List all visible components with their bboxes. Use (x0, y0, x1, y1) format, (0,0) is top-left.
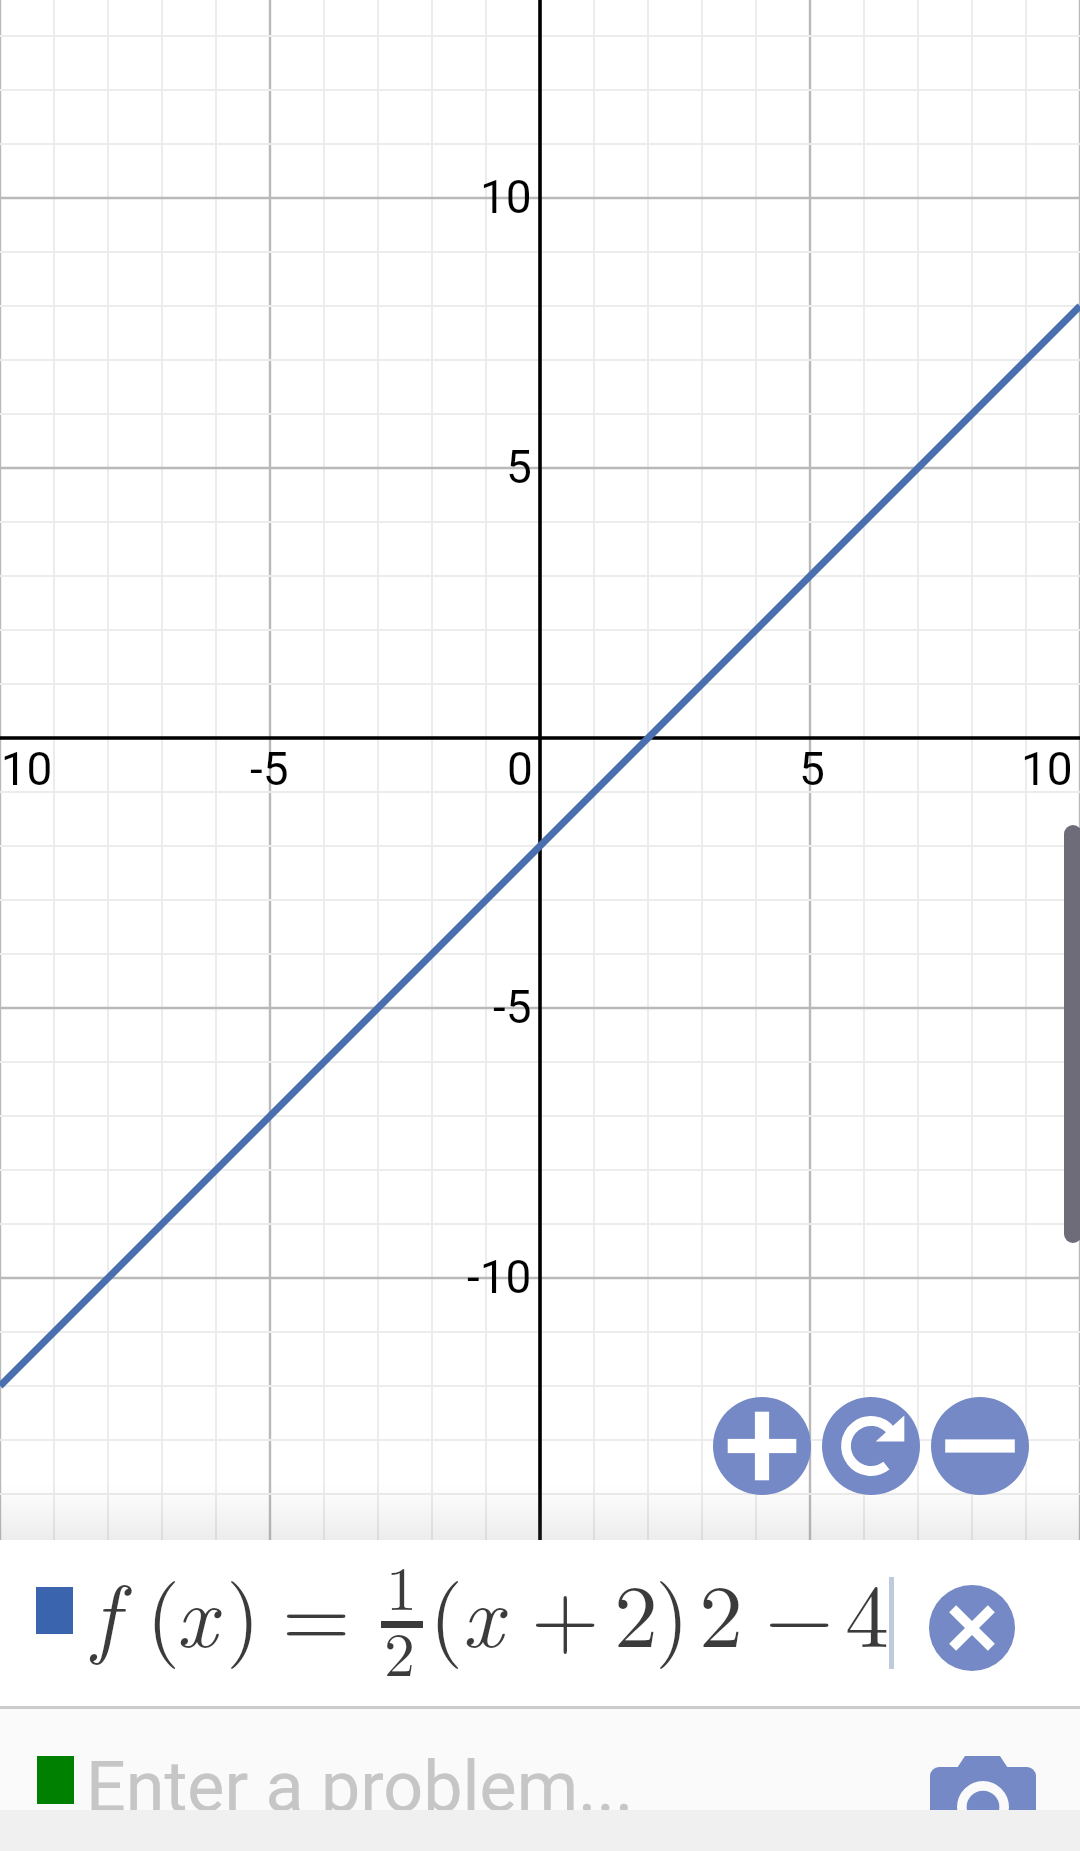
button[interactable]: Clear expression (929, 1585, 1015, 1671)
staticText: 2 (614, 1548, 659, 1673)
button[interactable]: f (0, 1540, 1080, 1706)
staticText: 4 (845, 1548, 890, 1673)
staticText: 1 (386, 1540, 418, 1628)
button[interactable]: Graph of f(x) (0, 0, 1080, 1540)
staticText: ) (655, 1548, 690, 1673)
staticText: f (92, 1548, 120, 1673)
staticText: 2 (384, 1606, 416, 1694)
staticText: ) (226, 1548, 261, 1673)
staticText: x (176, 1548, 217, 1673)
button[interactable]: Zoom out (931, 1397, 1029, 1495)
button[interactable]: Zoom in (713, 1397, 811, 1495)
staticText: x (462, 1548, 503, 1673)
staticText: 2 (699, 1548, 744, 1673)
staticText: ( (429, 1548, 464, 1673)
staticText: = (282, 1548, 351, 1673)
staticText: + (531, 1548, 600, 1673)
staticText: Enter a problem... (86, 1746, 634, 1828)
button[interactable]: Reset view (822, 1397, 920, 1495)
button[interactable]: Scan problem with camera (930, 1756, 1036, 1851)
button[interactable]: Enter a problem... (0, 1709, 1080, 1851)
staticText: − (765, 1548, 834, 1673)
staticText: ( (146, 1548, 181, 1673)
